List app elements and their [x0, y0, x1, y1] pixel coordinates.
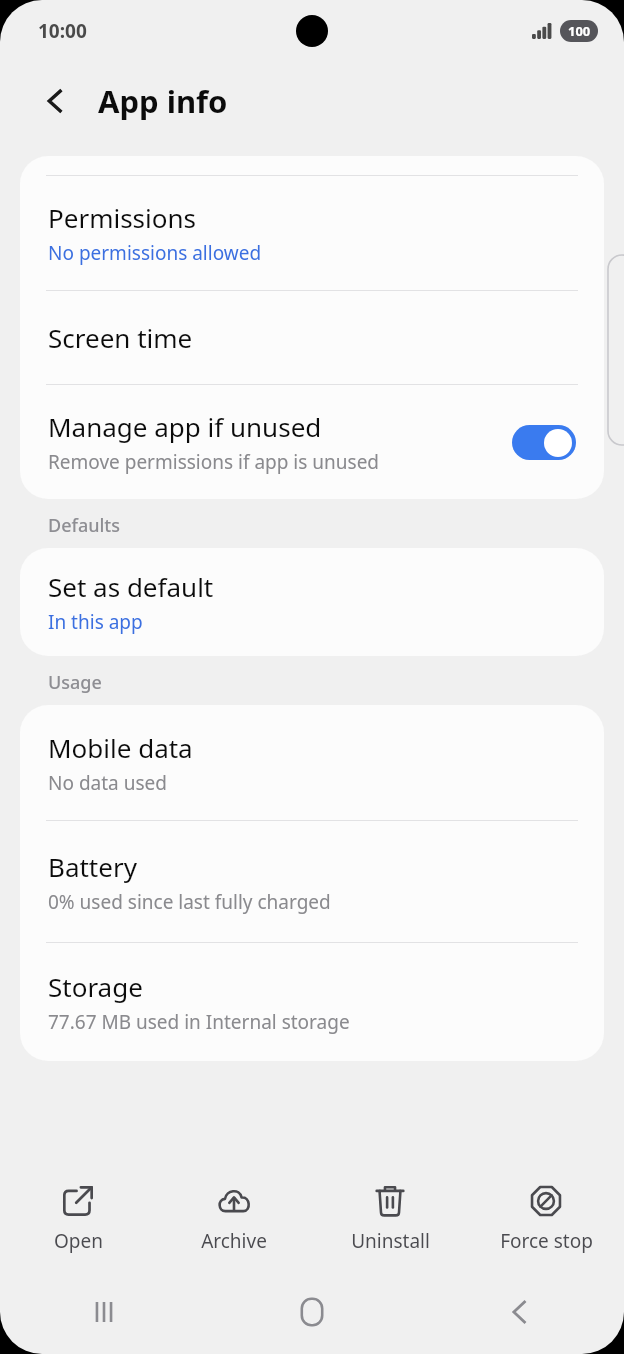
button[interactable]: Mobile data: [20, 705, 604, 820]
staticText: Usage: [48, 670, 102, 695]
staticText: 10:00: [38, 18, 87, 44]
button[interactable]: Recent apps: [0, 1270, 208, 1354]
staticText: Battery: [48, 849, 137, 884]
button[interactable]: Force stop: [468, 1166, 624, 1270]
staticText: 0% used since last fully charged: [48, 889, 331, 915]
button[interactable]: Uninstall: [312, 1166, 468, 1270]
button[interactable]: Open: [0, 1166, 156, 1270]
staticText: Manage app if unused: [48, 409, 322, 444]
staticText: Remove permissions if app is unused: [48, 449, 380, 475]
button[interactable]: Home: [208, 1270, 416, 1354]
button[interactable]: Manage app if unused toggle: [512, 425, 576, 460]
button[interactable]: Back: [34, 79, 78, 123]
staticText: Open: [54, 1228, 103, 1254]
button[interactable]: Permissions: [20, 176, 604, 290]
button[interactable]: Manage app if unused: [20, 385, 604, 499]
staticText: App info: [98, 80, 228, 122]
staticText: Set as default: [48, 569, 214, 604]
button[interactable]: Screen time: [20, 291, 604, 384]
staticText: 100: [568, 22, 591, 40]
staticText: Force stop: [500, 1228, 593, 1254]
staticText: Defaults: [48, 513, 120, 538]
button[interactable]: Archive: [156, 1166, 312, 1270]
button[interactable]: Set as default: [20, 548, 604, 656]
button[interactable]: Battery: [20, 821, 604, 942]
staticText: In this app: [48, 609, 143, 635]
staticText: No permissions allowed: [48, 240, 262, 266]
staticText: No data used: [48, 770, 167, 796]
staticText: Screen time: [48, 320, 193, 355]
staticText: Uninstall: [351, 1228, 430, 1254]
staticText: 77.67 MB used in Internal storage: [48, 1009, 350, 1035]
staticText: Storage: [48, 969, 143, 1004]
staticText: Archive: [201, 1228, 267, 1254]
button[interactable]: Back: [416, 1270, 624, 1354]
staticText: Permissions: [48, 200, 197, 235]
staticText: Mobile data: [48, 730, 193, 765]
button[interactable]: Storage: [20, 943, 604, 1061]
